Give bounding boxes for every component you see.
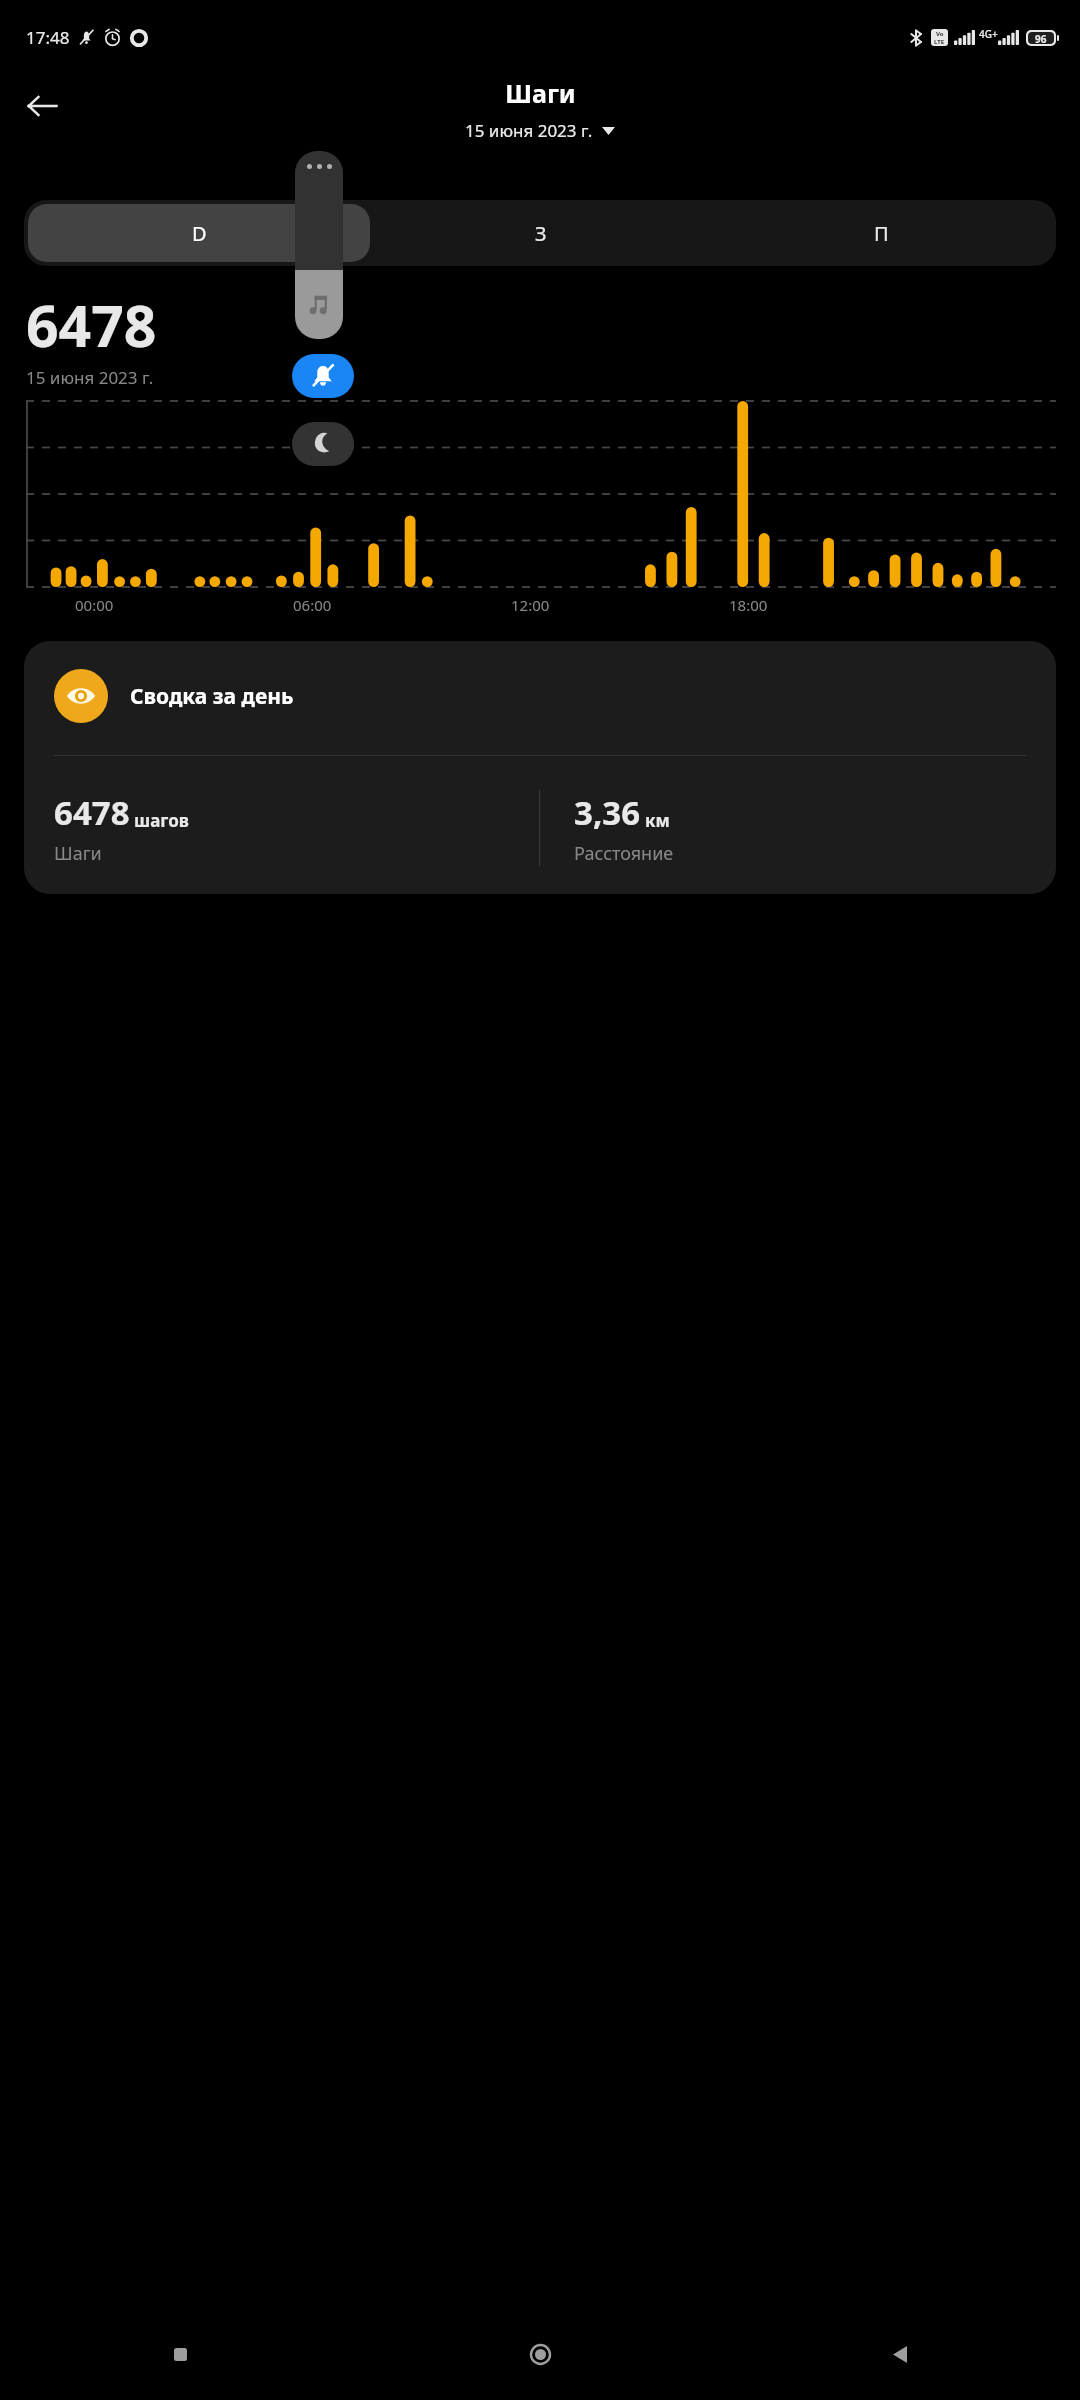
staticText: П xyxy=(874,220,889,247)
button[interactable]: Mute notifications xyxy=(292,354,354,398)
staticText: Шаги xyxy=(505,76,576,110)
staticText: 12:00 xyxy=(511,595,729,615)
staticText: 15 июня 2023 г. xyxy=(465,119,593,142)
staticText: З xyxy=(535,220,547,247)
button[interactable]: D xyxy=(28,204,370,262)
staticText: км xyxy=(645,809,670,832)
staticText: Шаги xyxy=(54,841,102,866)
staticText: Расстояние xyxy=(574,841,674,866)
staticText: 00:00 xyxy=(75,595,293,615)
staticText: 6478 xyxy=(54,790,130,835)
staticText: 4G+ xyxy=(979,27,998,41)
button[interactable]: Back xyxy=(14,78,70,134)
staticText: LTE xyxy=(934,38,945,46)
staticText: 17:48 xyxy=(26,26,70,49)
staticText: D xyxy=(192,220,207,247)
staticText: 6478 xyxy=(26,286,157,364)
button[interactable]: Back xyxy=(720,2308,1080,2400)
staticText: 18:00 xyxy=(729,595,947,615)
staticText: Сводка за день xyxy=(130,682,294,711)
button[interactable]: Recent apps xyxy=(0,2308,360,2400)
button[interactable]: З xyxy=(370,204,711,262)
staticText: 06:00 xyxy=(293,595,511,615)
button[interactable]: Do not disturb xyxy=(292,422,354,466)
button[interactable]: П xyxy=(711,204,1052,262)
staticText: 3,36 xyxy=(574,790,641,835)
button[interactable]: Home xyxy=(360,2308,720,2400)
button[interactable]: Сводка за день xyxy=(24,641,1056,894)
staticText: шагов xyxy=(134,809,189,832)
staticText: 15 июня 2023 г. xyxy=(26,366,154,389)
staticText: 96 xyxy=(1035,32,1047,44)
button[interactable]: Floating music widget xyxy=(295,151,343,339)
button[interactable]: 15 июня 2023 г. xyxy=(465,119,615,142)
staticText: Vo xyxy=(936,30,944,38)
